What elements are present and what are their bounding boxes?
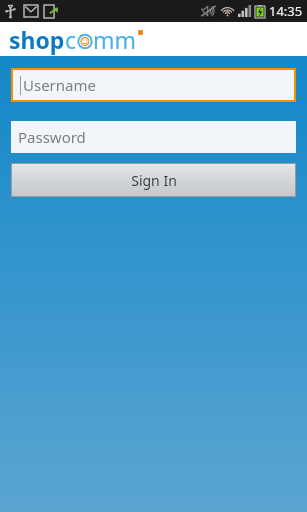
staticText: mm [93,24,137,55]
staticText: shop [9,24,65,55]
staticText: Sign In [131,171,177,190]
button[interactable]: Password [11,121,296,153]
button[interactable]: Username [13,70,294,100]
staticText: Password [18,127,86,147]
staticText: c [65,24,77,55]
staticText: Username [23,75,96,95]
staticText: 14:35 [269,2,303,20]
button[interactable]: Sign In [12,164,295,196]
